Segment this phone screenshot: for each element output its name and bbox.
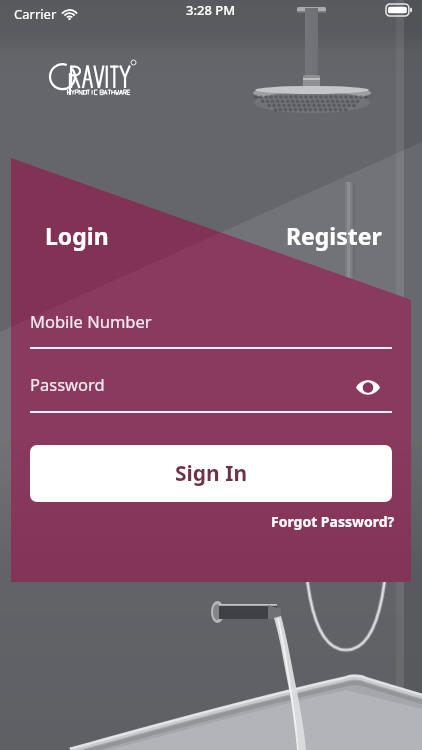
button[interactable]: Show password bbox=[352, 372, 383, 403]
staticText: Sign In bbox=[175, 459, 248, 488]
staticText: 3:28 PM bbox=[186, 1, 236, 19]
button[interactable]: Register bbox=[286, 220, 382, 251]
staticText: Login bbox=[45, 220, 109, 251]
staticText: Forgot Password? bbox=[271, 512, 395, 531]
button[interactable]: Forgot Password? bbox=[271, 512, 395, 531]
staticText: Register bbox=[286, 220, 382, 251]
button[interactable]: Password bbox=[30, 373, 392, 411]
staticText: Mobile Number bbox=[30, 310, 152, 332]
button[interactable]: Login bbox=[45, 220, 109, 251]
button[interactable]: Mobile Number bbox=[30, 310, 392, 348]
button[interactable]: Sign In bbox=[30, 445, 392, 502]
staticText: Carrier bbox=[14, 5, 57, 23]
staticText: Password bbox=[30, 373, 105, 395]
